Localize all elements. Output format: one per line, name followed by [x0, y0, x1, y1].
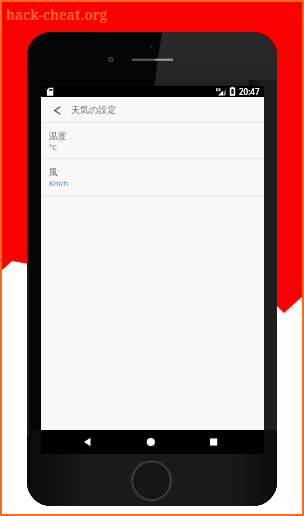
staticText: 風	[49, 167, 58, 178]
staticText: Km/h	[49, 178, 69, 188]
button[interactable]: 風	[41, 159, 264, 196]
staticText: 天気の設定	[71, 104, 117, 115]
button[interactable]: Back	[44, 97, 70, 123]
staticText: °C	[49, 142, 57, 152]
staticText: hack-cheat.org	[6, 6, 108, 24]
staticText: 20:47	[239, 86, 260, 97]
staticText: 温度	[49, 131, 66, 142]
button[interactable]: 温度	[41, 123, 264, 159]
